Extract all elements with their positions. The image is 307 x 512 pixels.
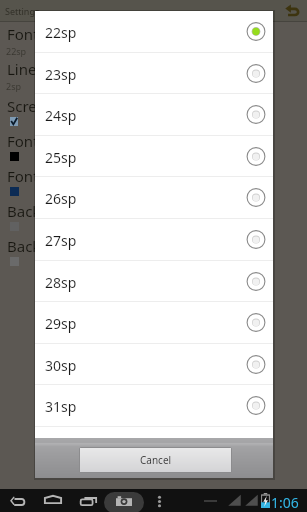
button[interactable]: 25sp bbox=[35, 136, 273, 178]
button[interactable]: Cancel bbox=[80, 448, 231, 472]
staticText: Background image bbox=[7, 236, 141, 256]
button[interactable]: Font color bbox=[0, 128, 307, 163]
button[interactable]: Screen always on bbox=[0, 93, 307, 128]
staticText: 24sp bbox=[45, 106, 77, 125]
button[interactable]: Back bbox=[7, 493, 29, 511]
staticText: 28sp bbox=[45, 273, 77, 292]
button[interactable]: 26sp bbox=[35, 177, 273, 219]
staticText: Cancel bbox=[140, 453, 172, 467]
staticText: Settings bbox=[5, 5, 40, 17]
staticText: 27sp bbox=[45, 231, 77, 250]
staticText: 22sp bbox=[45, 23, 77, 42]
button[interactable] bbox=[35, 427, 273, 469]
button[interactable]: 28sp bbox=[35, 261, 273, 303]
button[interactable]: Background image bbox=[0, 233, 307, 268]
button[interactable]: 24sp bbox=[35, 94, 273, 136]
staticText: Font shadow color bbox=[7, 166, 137, 186]
staticText: Line spacing bbox=[7, 59, 95, 79]
button[interactable]: Font shadow color bbox=[0, 163, 307, 198]
staticText: Font color bbox=[7, 131, 78, 151]
button[interactable]: Home bbox=[40, 490, 66, 509]
staticText: Font size bbox=[7, 24, 70, 44]
staticText: 25sp bbox=[45, 148, 77, 167]
staticText: 30sp bbox=[45, 356, 77, 375]
staticText: 22sp bbox=[6, 45, 27, 57]
staticText: Screen always on bbox=[7, 96, 128, 116]
button[interactable]: 29sp bbox=[35, 302, 273, 344]
staticText: 2sp bbox=[6, 80, 21, 92]
staticText: 31sp bbox=[45, 397, 77, 416]
button[interactable]: 22sp bbox=[35, 11, 273, 53]
button[interactable]: More options bbox=[153, 495, 165, 507]
button[interactable]: Camera bbox=[104, 492, 144, 512]
button[interactable]: Font size bbox=[0, 23, 307, 58]
button[interactable]: 27sp bbox=[35, 219, 273, 261]
button[interactable]: Line spacing bbox=[0, 58, 307, 93]
button[interactable]: Undo bbox=[283, 0, 303, 20]
button[interactable]: 30sp bbox=[35, 344, 273, 386]
button[interactable]: 23sp bbox=[35, 53, 273, 95]
staticText: 23sp bbox=[45, 65, 77, 84]
staticText: 26sp bbox=[45, 189, 77, 208]
staticText: 1:06 bbox=[271, 493, 299, 512]
button[interactable]: 31sp bbox=[35, 385, 273, 427]
staticText: Background color bbox=[7, 201, 132, 221]
button[interactable]: Background color bbox=[0, 198, 307, 233]
button[interactable]: Recent apps bbox=[76, 491, 101, 511]
staticText: 29sp bbox=[45, 314, 77, 333]
